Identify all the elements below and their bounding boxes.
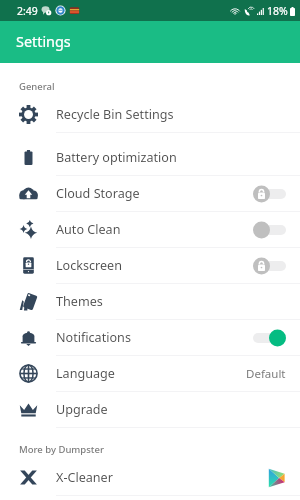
staticText: Themes	[56, 293, 103, 310]
button[interactable]: X-Cleaner	[0, 460, 300, 496]
staticText: Settings	[16, 32, 71, 52]
staticText: Recycle Bin Settings	[56, 106, 174, 123]
staticText: Auto Clean	[56, 221, 121, 238]
staticText: More by Dumpster	[19, 443, 104, 456]
button[interactable]: Toggle	[253, 220, 286, 240]
staticText: Upgrade	[56, 401, 108, 418]
button[interactable]: Language	[0, 356, 300, 392]
button[interactable]: Toggle	[253, 256, 286, 276]
button[interactable]: Lockscreen	[0, 248, 300, 284]
button[interactable]: Toggle	[253, 184, 286, 204]
staticText: Default	[246, 366, 286, 382]
button[interactable]: Cloud Storage	[0, 176, 300, 212]
staticText: Battery optimization	[56, 149, 177, 166]
staticText: 2:49	[17, 4, 38, 18]
staticText: Lockscreen	[56, 257, 123, 274]
button[interactable]: Upgrade	[0, 392, 300, 428]
staticText: Notifications	[56, 329, 131, 346]
button[interactable]: Toggle	[253, 328, 286, 348]
staticText: Language	[56, 365, 115, 382]
staticText: 18%	[267, 4, 288, 18]
button[interactable]: Recycle Bin Settings	[0, 97, 300, 133]
staticText: General	[19, 80, 55, 93]
staticText: Cloud Storage	[56, 185, 140, 202]
staticText: X-Cleaner	[56, 469, 113, 486]
button[interactable]: Battery optimization	[0, 140, 300, 176]
button[interactable]: Auto Clean	[0, 212, 300, 248]
button[interactable]: Notifications	[0, 320, 300, 356]
button[interactable]: Themes	[0, 284, 300, 320]
